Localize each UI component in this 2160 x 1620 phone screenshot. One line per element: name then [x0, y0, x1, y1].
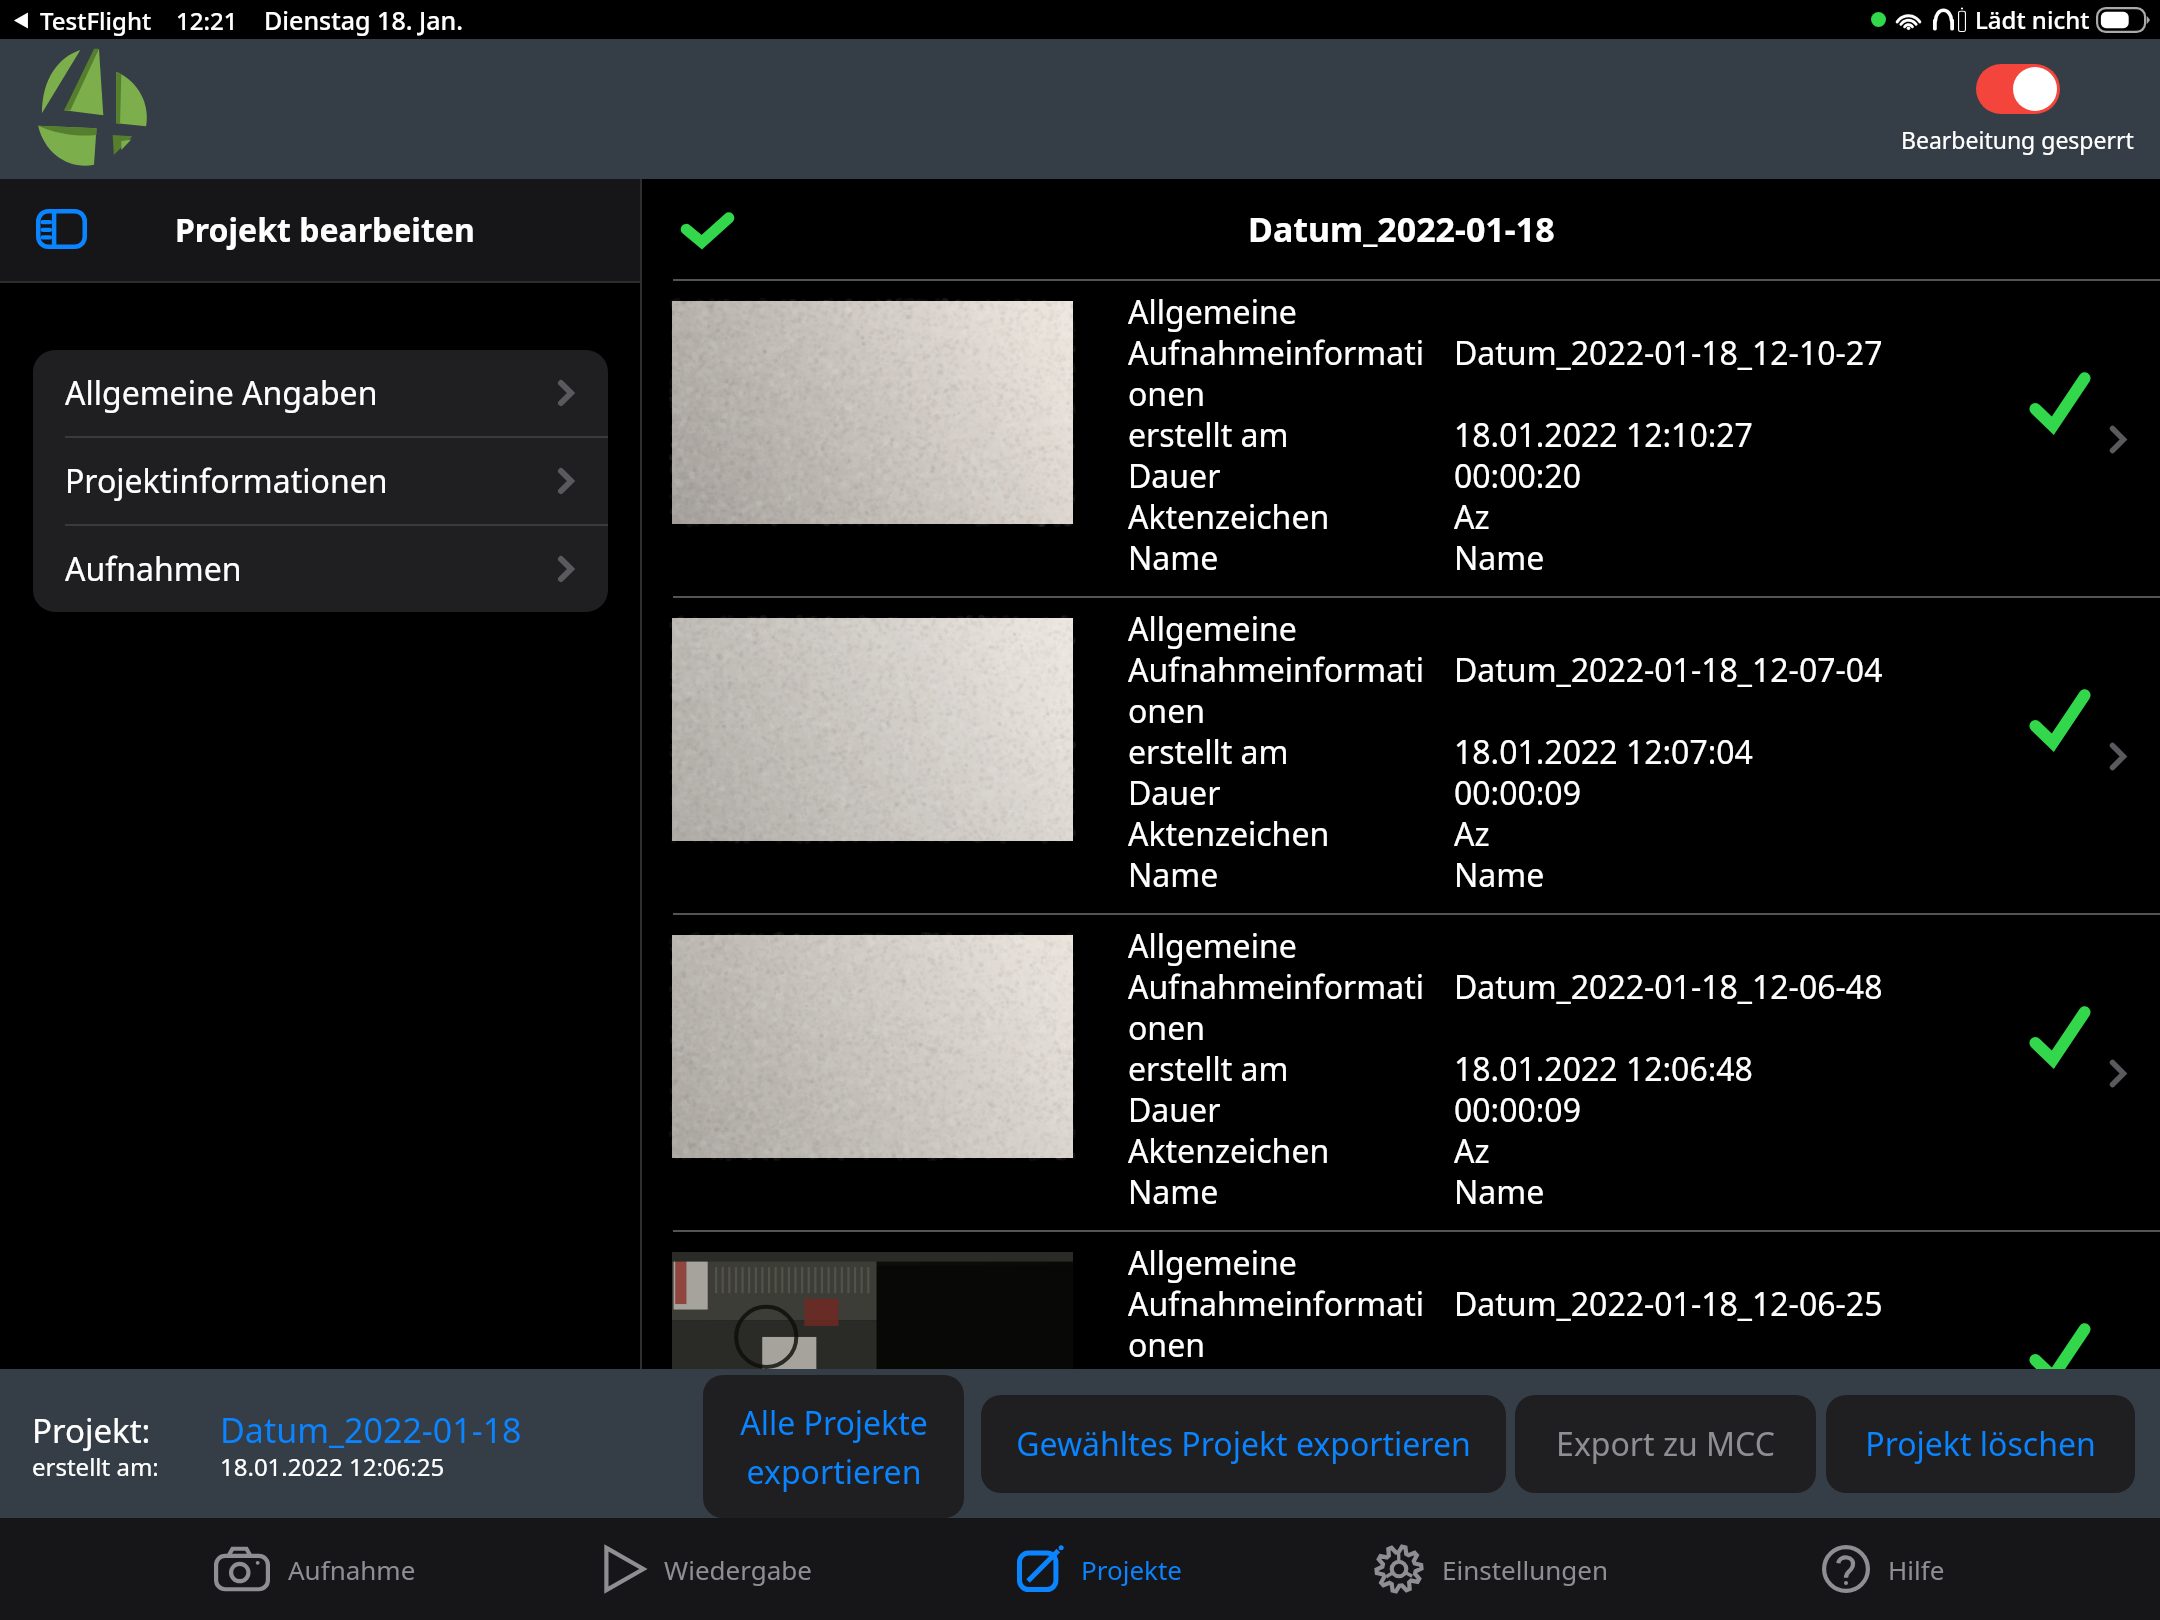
button[interactable]: Details anzeigen [2086, 730, 2150, 784]
staticText: Aufnahmen [65, 547, 242, 591]
staticText: Projekt: [32, 1408, 151, 1453]
button[interactable]: Aufnahme ausgewählt [2014, 993, 2106, 1079]
button[interactable]: Aufnahmen [33, 526, 608, 612]
button[interactable]: Details anzeigen [2086, 1364, 2150, 1418]
staticText: Hilfe [1888, 1552, 1945, 1587]
staticText: Wiedergabe [664, 1552, 812, 1587]
button[interactable]: Projekte [903, 1518, 1295, 1620]
staticText: Lädt nicht [1975, 3, 2090, 36]
button[interactable]: Allgemeine Aufnahmeinformati onen erstel… [642, 915, 2160, 1230]
staticText: Projektinformationen [65, 459, 388, 503]
staticText: erstellt am: [32, 1450, 159, 1483]
button[interactable]: Projektinformationen [33, 438, 608, 526]
button[interactable]: Allgemeine Aufnahmeinformati onen erstel… [642, 281, 2160, 596]
button[interactable]: Seitenleiste umschalten [28, 201, 94, 257]
staticText: Datum_2022-01-18_12-06-25 18.01.2022 12:… [1454, 1241, 1883, 1378]
staticText: Allgemeine Aufnahmeinformati onen erstel… [1128, 290, 1425, 580]
staticText: Gewähltes Projekt exportieren [1016, 1422, 1471, 1466]
button[interactable]: Details anzeigen [2086, 413, 2150, 467]
staticText: Datum_2022-01-18_12-07-04 18.01.2022 12:… [1454, 607, 1883, 897]
button[interactable]: Allgemeine Aufnahmeinformati onen erstel… [642, 598, 2160, 913]
button[interactable]: Wiedergabe [511, 1518, 903, 1620]
staticText: Datum_2022-01-18_12-06-48 18.01.2022 12:… [1454, 924, 1883, 1214]
staticText: Datum_2022-01-18 [1248, 206, 1555, 252]
button[interactable]: Aufnahme ausgewählt [2014, 676, 2106, 762]
staticText: Export zu MCC [1556, 1422, 1775, 1466]
button[interactable]: Export zu MCC [1515, 1395, 1816, 1493]
button[interactable]: Allgemeine Aufnahmeinformati onen erstel… [642, 1232, 2160, 1369]
staticText: Allgemeine Aufnahmeinformati onen erstel… [1128, 924, 1425, 1214]
button[interactable]: Gewähltes Projekt exportieren [981, 1395, 1506, 1493]
button[interactable]: Allgemeine Angaben [33, 350, 608, 438]
staticText: Projekt löschen [1865, 1422, 2096, 1466]
staticText: Projekt bearbeiten [175, 208, 475, 252]
button[interactable]: Bearbeitung gesperrt [1901, 64, 2134, 155]
staticText: Alle Projekte exportieren [740, 1401, 928, 1493]
staticText: Aufnahme [288, 1552, 416, 1587]
staticText: 12:21 [176, 4, 238, 37]
button[interactable]: Details anzeigen [2086, 1047, 2150, 1101]
staticText: Einstellungen [1442, 1552, 1609, 1587]
button[interactable]: Einstellungen [1295, 1518, 1687, 1620]
staticText: Datum_2022-01-18_12-10-27 18.01.2022 12:… [1454, 290, 1883, 580]
staticText: TestFlight [40, 4, 152, 37]
button[interactable]: Alle auswählen [681, 198, 749, 254]
staticText: Allgemeine Aufnahmeinformati onen erstel… [1128, 607, 1425, 897]
button[interactable]: Alle Projekte exportieren [703, 1375, 964, 1518]
button[interactable]: Projekt löschen [1826, 1395, 2135, 1493]
staticText: Bearbeitung gesperrt [1901, 124, 2134, 155]
staticText: 18.01.2022 12:06:25 [220, 1450, 445, 1483]
button[interactable]: Aufnahme ausgewählt [2014, 359, 2106, 445]
button[interactable]: Aufnahme [119, 1518, 511, 1620]
staticText: Datum_2022-01-18 [220, 1407, 522, 1453]
button[interactable]: Hilfe [1687, 1518, 2079, 1620]
staticText: Allgemeine Angaben [65, 371, 378, 415]
staticText: Projekte [1081, 1552, 1182, 1587]
staticText: Allgemeine Aufnahmeinformati onen erstel… [1128, 1241, 1425, 1378]
button[interactable]: Aufnahme ausgewählt [2014, 1310, 2106, 1396]
staticText: Dienstag 18. Jan. [264, 3, 464, 37]
